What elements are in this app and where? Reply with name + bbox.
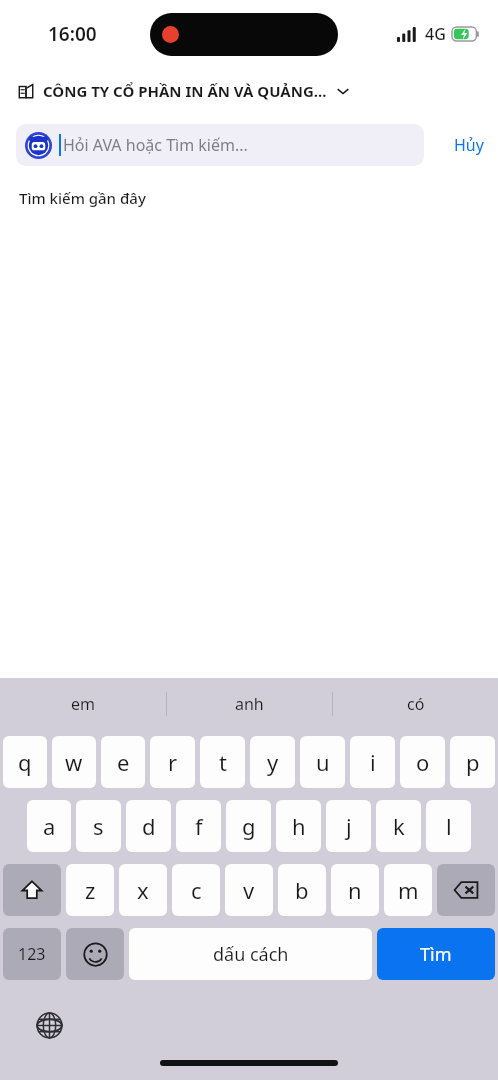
button[interactable]: j xyxy=(326,800,371,852)
staticText: o xyxy=(416,747,430,777)
staticText: s xyxy=(93,811,104,841)
button[interactable]: Emoji xyxy=(66,928,124,980)
button[interactable]: v xyxy=(225,864,273,916)
staticText: l xyxy=(446,811,452,841)
staticText: g xyxy=(242,811,256,841)
button[interactable]: m xyxy=(384,864,432,916)
button[interactable]: h xyxy=(276,800,321,852)
button[interactable]: x xyxy=(119,864,167,916)
staticText: v xyxy=(243,875,255,905)
button[interactable]: em xyxy=(0,678,166,730)
button[interactable]: dấu cách xyxy=(129,928,372,980)
button[interactable]: Backspace xyxy=(437,864,495,916)
button[interactable]: u xyxy=(300,736,345,788)
button[interactable]: i xyxy=(350,736,395,788)
button[interactable]: Tìm xyxy=(377,928,495,980)
staticText: x xyxy=(137,875,149,905)
staticText: n xyxy=(348,875,362,905)
button[interactable]: a xyxy=(27,800,71,852)
button[interactable]: l xyxy=(426,800,471,852)
button[interactable]: w xyxy=(52,736,96,788)
staticText: 16:00 xyxy=(48,21,97,47)
staticText: anh xyxy=(235,693,264,715)
staticText: dấu cách xyxy=(213,942,289,967)
staticText: j xyxy=(346,811,352,841)
staticText: i xyxy=(370,747,376,777)
button[interactable]: anh xyxy=(167,678,332,730)
staticText: Tìm xyxy=(420,942,452,967)
button[interactable]: Change keyboard language xyxy=(28,1004,70,1046)
staticText: Hủy xyxy=(454,134,484,156)
button[interactable]: c xyxy=(172,864,220,916)
staticText: r xyxy=(168,747,178,777)
button[interactable]: g xyxy=(226,800,271,852)
button[interactable]: AVA assistant xyxy=(16,124,424,166)
staticText: Hỏi AVA hoặc Tìm kiếm... xyxy=(63,134,248,156)
button[interactable]: t xyxy=(200,736,245,788)
staticText: m xyxy=(398,875,419,905)
staticText: b xyxy=(295,875,309,905)
button[interactable]: y xyxy=(250,736,295,788)
staticText: có xyxy=(407,693,425,715)
staticText: w xyxy=(65,747,83,777)
button[interactable]: f xyxy=(176,800,221,852)
staticText: em xyxy=(71,693,95,715)
staticText: q xyxy=(18,747,32,777)
button[interactable]: o xyxy=(400,736,445,788)
staticText: d xyxy=(142,811,156,841)
button[interactable]: 123 xyxy=(3,928,61,980)
button[interactable]: CÔNG TY CỔ PHẦN IN ẤN VÀ QUẢNG... xyxy=(0,68,498,114)
staticText: t xyxy=(219,747,227,777)
button[interactable]: s xyxy=(76,800,121,852)
staticText: u xyxy=(316,747,330,777)
staticText: e xyxy=(117,747,130,777)
button[interactable]: Shift xyxy=(3,864,61,916)
button[interactable]: d xyxy=(126,800,171,852)
staticText: CÔNG TY CỔ PHẦN IN ẤN VÀ QUẢNG... xyxy=(43,81,327,101)
button[interactable]: n xyxy=(331,864,379,916)
staticText: 4G xyxy=(425,23,446,45)
button[interactable]: b xyxy=(278,864,326,916)
button[interactable]: r xyxy=(150,736,195,788)
staticText: c xyxy=(191,875,202,905)
staticText: z xyxy=(85,875,96,905)
staticText: a xyxy=(43,811,56,841)
staticText: Tìm kiếm gần đây xyxy=(19,188,146,208)
staticText: h xyxy=(292,811,306,841)
button[interactable]: e xyxy=(101,736,145,788)
staticText: y xyxy=(267,747,279,777)
staticText: p xyxy=(466,747,480,777)
staticText: k xyxy=(393,811,405,841)
button[interactable]: Hủy xyxy=(440,114,498,176)
button[interactable]: k xyxy=(376,800,421,852)
button[interactable]: z xyxy=(66,864,114,916)
button[interactable]: p xyxy=(450,736,495,788)
button[interactable]: có xyxy=(333,678,498,730)
button[interactable]: q xyxy=(3,736,47,788)
other: AVA assistant xyxy=(25,132,52,159)
staticText: f xyxy=(195,811,203,841)
staticText: 123 xyxy=(18,943,46,965)
